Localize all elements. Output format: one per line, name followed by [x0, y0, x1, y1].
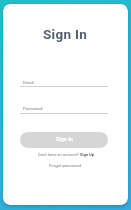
button[interactable]: Sign Up: [80, 152, 94, 157]
staticText: Email: [23, 80, 34, 85]
staticText: Don't have an account?: [38, 152, 80, 157]
staticText: Sign In: [56, 136, 73, 142]
button[interactable]: Forgot password: [49, 163, 82, 168]
button[interactable]: Sign In: [20, 132, 108, 148]
staticText: Password: [23, 106, 43, 111]
staticText: Sign In: [43, 26, 88, 42]
